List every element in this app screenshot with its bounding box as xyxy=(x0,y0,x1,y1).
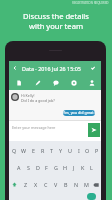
staticText: Discuss the details xyxy=(23,11,89,21)
staticText: Did I do a good job? xyxy=(21,98,55,103)
button[interactable]: B xyxy=(61,176,71,193)
button[interactable]: Enter xyxy=(82,193,101,200)
button[interactable]: K xyxy=(78,159,87,176)
button[interactable]: M xyxy=(81,176,91,193)
button[interactable]: C xyxy=(41,176,51,193)
staticText: Q xyxy=(12,147,17,154)
button[interactable]: X xyxy=(31,176,41,193)
button[interactable]: O xyxy=(83,142,92,159)
staticText: Hi Kelly! xyxy=(21,93,35,98)
staticText: L xyxy=(90,164,93,171)
button[interactable]: G xyxy=(51,159,60,176)
button[interactable]: P xyxy=(92,142,101,159)
staticText: F xyxy=(45,164,48,171)
staticText: E xyxy=(32,147,35,154)
button[interactable]: Y xyxy=(56,142,65,159)
button[interactable]: L xyxy=(87,159,96,176)
staticText: A xyxy=(17,164,21,171)
staticText: with your team xyxy=(29,21,83,31)
staticText: Yes, you did great! :) xyxy=(63,110,95,116)
staticText: S xyxy=(27,164,30,171)
staticText: R xyxy=(41,147,45,154)
button[interactable]: H xyxy=(60,159,69,176)
staticText: Y xyxy=(59,147,63,154)
button[interactable]: Z xyxy=(20,176,31,193)
button[interactable]: Q xyxy=(9,142,19,159)
staticText: Z xyxy=(24,181,28,188)
staticText: I xyxy=(78,147,80,154)
staticText: Data · 2016 Jul 26 15:05 xyxy=(22,65,81,72)
button[interactable]: W xyxy=(19,142,29,159)
button[interactable]: A xyxy=(14,159,24,176)
button[interactable]: F xyxy=(42,159,51,176)
button[interactable]: Enter your message here xyxy=(12,122,88,132)
button[interactable]: Backspace xyxy=(91,176,101,193)
button[interactable]: N xyxy=(71,176,81,193)
staticText: W xyxy=(21,147,27,154)
staticText: X xyxy=(34,181,38,188)
button[interactable]: R xyxy=(38,142,47,159)
button[interactable]: Profile xyxy=(83,75,101,90)
button[interactable]: I xyxy=(74,142,83,159)
button[interactable]: Settings xyxy=(65,75,83,90)
button[interactable]: Send xyxy=(88,123,100,137)
staticText: Enter your message here xyxy=(12,125,56,130)
staticText: D xyxy=(36,164,40,171)
button[interactable]: V xyxy=(51,176,61,193)
staticText: H xyxy=(63,164,67,171)
staticText: REGISTRATION REQUIRED xyxy=(72,1,109,5)
staticText: C xyxy=(44,181,48,188)
staticText: G xyxy=(54,164,58,171)
staticText: M xyxy=(84,181,89,188)
button[interactable]: Chat xyxy=(47,75,65,90)
button[interactable]: S xyxy=(24,159,33,176)
button[interactable]: E xyxy=(29,142,38,159)
staticText: K xyxy=(81,164,85,171)
staticText: V xyxy=(54,181,58,188)
staticText: P xyxy=(95,147,99,154)
staticText: O xyxy=(85,147,90,154)
staticText: J xyxy=(73,164,75,171)
button[interactable]: Shift xyxy=(9,176,20,193)
button[interactable]: Back xyxy=(11,64,19,72)
staticText: T xyxy=(50,147,53,154)
staticText: N xyxy=(74,181,79,188)
button[interactable]: T xyxy=(47,142,56,159)
button[interactable]: J xyxy=(69,159,78,176)
staticText: B xyxy=(64,181,68,188)
button[interactable]: File xyxy=(9,75,28,90)
button[interactable]: U xyxy=(65,142,74,159)
button[interactable]: Done xyxy=(89,64,97,72)
staticText: U xyxy=(68,147,72,154)
button[interactable]: Edit xyxy=(28,75,47,90)
button[interactable]: D xyxy=(33,159,42,176)
